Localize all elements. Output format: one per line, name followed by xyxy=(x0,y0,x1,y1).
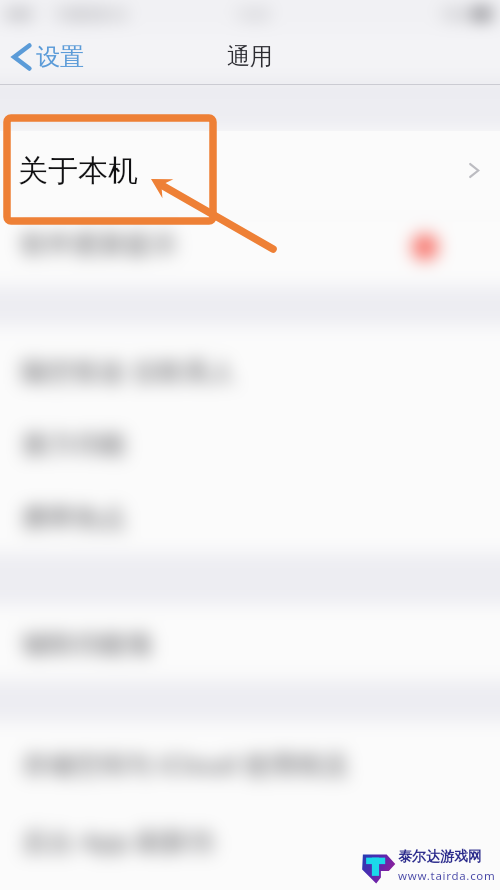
staticText: 接力功能 xyxy=(22,428,126,461)
button[interactable]: 软件更新提示 xyxy=(0,210,500,286)
button[interactable]: 后台 App 刷新功 xyxy=(0,798,500,876)
staticText: 通用 xyxy=(227,42,273,71)
staticText: 后台 App 刷新功 xyxy=(22,823,215,859)
button[interactable]: 隔空投送 仅联系人 xyxy=(0,326,500,404)
button[interactable]: 接力功能 xyxy=(0,404,500,480)
button[interactable]: 携带热点 xyxy=(0,480,500,553)
staticText: 泰尔达游戏网 xyxy=(398,848,482,866)
staticText: 辅助功能项 xyxy=(22,628,152,661)
staticText: 中国联通 4G xyxy=(55,5,128,23)
staticText: 隔空投送 仅联系人 xyxy=(21,353,236,389)
staticText: 72% xyxy=(441,5,467,23)
staticText: 软件更新提示 xyxy=(21,228,177,261)
button[interactable]: 存储空间与 iCloud 使用情况 xyxy=(0,722,500,798)
staticText: 携带热点 xyxy=(22,502,126,535)
staticText: ●●● xyxy=(6,8,33,20)
staticText: 关于本机 xyxy=(18,152,138,190)
button[interactable]: 设置 xyxy=(0,36,94,78)
button[interactable]: 辅助功能项 xyxy=(0,605,500,680)
staticText: www.tairda.com xyxy=(398,868,496,884)
staticText: 设置 xyxy=(36,42,84,72)
button[interactable]: 关于本机 xyxy=(0,131,500,210)
staticText: 存储空间与 iCloud 使用情况 xyxy=(22,746,348,782)
